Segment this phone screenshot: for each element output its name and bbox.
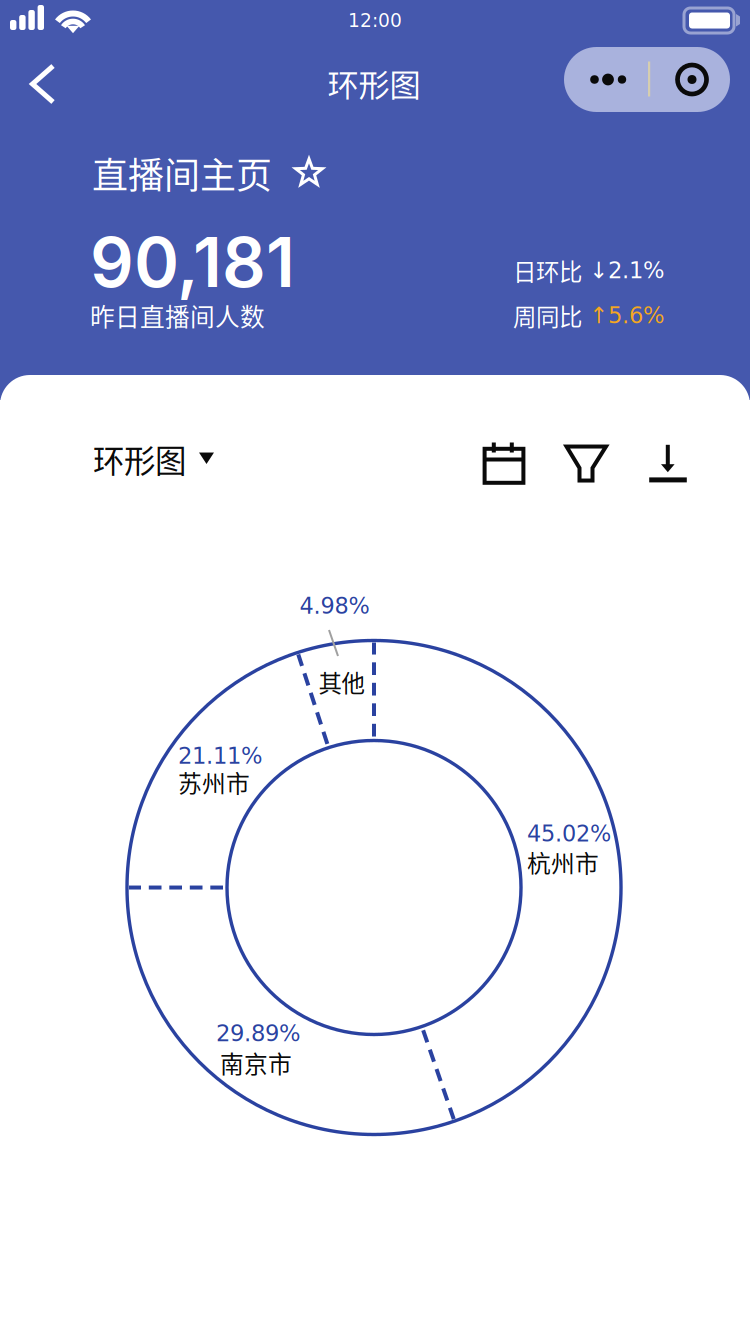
staticText: 90,181 <box>90 221 295 304</box>
button[interactable]: Download <box>0 0 750 1334</box>
staticText: 其他 <box>318 665 364 699</box>
button[interactable]: Filter <box>0 0 750 1334</box>
staticText: 环形图 <box>327 60 420 106</box>
staticText: ↓2.1% <box>589 257 665 284</box>
button[interactable]: Back <box>0 0 750 1334</box>
staticText: 环形图 <box>93 436 186 482</box>
staticText: 杭州市 <box>527 845 599 879</box>
button[interactable]: 环形图 <box>0 0 750 1334</box>
button[interactable]: More options <box>0 0 750 1334</box>
staticText: 4.98% <box>299 593 369 619</box>
staticText: 日环比 <box>513 253 582 287</box>
staticText: 12:00 <box>348 10 402 31</box>
staticText: 45.02% <box>527 821 611 847</box>
button[interactable]: Calendar <box>0 0 750 1334</box>
staticText: 29.89% <box>216 1020 301 1046</box>
staticText: 昨日直播间人数 <box>90 297 265 333</box>
staticText: 周同比 <box>513 298 582 332</box>
staticText: 南京市 <box>220 1045 292 1080</box>
staticText: 苏州市 <box>178 765 250 799</box>
staticText: ↑5.6% <box>589 302 665 329</box>
staticText: 21.11% <box>178 743 263 769</box>
staticText: 直播间主页 <box>92 147 272 199</box>
